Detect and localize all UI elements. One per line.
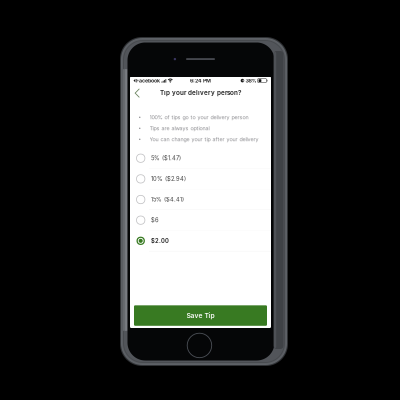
staticText: Facebook [136, 77, 160, 84]
staticText: 10% ($2.94) [151, 175, 186, 182]
button[interactable]: Save Tip [134, 305, 267, 326]
staticText: You can change your tip after your deliv… [149, 136, 258, 143]
button[interactable]: $2.00 [130, 231, 271, 251]
staticText: 6:24 PM [190, 77, 211, 84]
staticText: 5% ($1.47) [151, 155, 181, 162]
staticText: Tips are always optional [149, 125, 209, 132]
staticText: $6 [151, 217, 159, 224]
button[interactable]: 15% ($4.41) [130, 189, 271, 210]
staticText: Tip your delivery person? [160, 89, 241, 96]
button[interactable]: Back [130, 84, 144, 101]
staticText: 38% [245, 77, 256, 84]
button[interactable]: $6 [130, 210, 271, 230]
staticText: 15% ($4.41) [151, 196, 184, 203]
button[interactable]: 5% ($1.47) [130, 148, 271, 168]
staticText: Save Tip [186, 311, 214, 320]
button[interactable]: 10% ($2.94) [130, 169, 271, 189]
staticText: 100% of tips go to your delivery person [149, 114, 248, 121]
staticText: $2.00 [151, 237, 169, 244]
